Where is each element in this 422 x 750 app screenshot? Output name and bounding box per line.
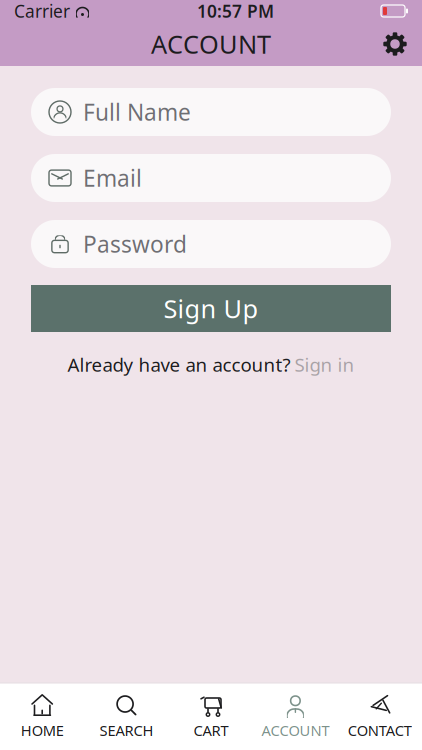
button[interactable]: CONTACT	[338, 687, 422, 744]
staticText: Already have an account?	[67, 352, 290, 377]
staticText: HOME	[21, 720, 64, 740]
button[interactable]: Email	[31, 154, 391, 202]
button[interactable]: Settings	[368, 23, 422, 65]
staticText: 10:57 PM	[197, 0, 274, 22]
staticText: Sign Up	[163, 292, 258, 325]
staticText: CART	[193, 720, 228, 740]
button[interactable]: Already have an account?	[59, 348, 362, 381]
staticText: SEARCH	[100, 720, 154, 740]
button[interactable]: Password	[31, 220, 391, 268]
staticText: Password	[83, 229, 187, 259]
staticText: Email	[83, 163, 142, 193]
button[interactable]: Sign Up	[31, 285, 391, 332]
button[interactable]: ACCOUNT	[253, 687, 338, 744]
button[interactable]: HOME	[0, 687, 84, 744]
staticText: ACCOUNT	[151, 27, 271, 61]
staticText: Sign in	[294, 352, 354, 377]
staticText: CONTACT	[348, 720, 412, 740]
button[interactable]: SEARCH	[84, 687, 169, 744]
button[interactable]: Full Name	[31, 88, 391, 136]
staticText: ACCOUNT	[261, 720, 329, 740]
button[interactable]: CART	[169, 687, 253, 744]
staticText: Full Name	[83, 97, 191, 127]
staticText: Carrier	[14, 0, 70, 22]
